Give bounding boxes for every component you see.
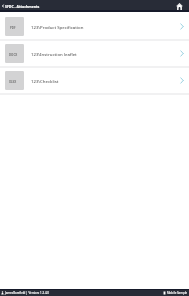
button[interactable]: Home [173, 0, 185, 12]
staticText: SFDC - Attachments [5, 4, 40, 9]
staticText: 123\Product Specification [31, 24, 180, 30]
staticText: XLSX [9, 80, 17, 84]
staticText: PDF [10, 26, 16, 30]
staticText: 123\Checklist [31, 78, 180, 84]
button[interactable]: PDF [0, 14, 189, 39]
button[interactable]: XLSX [0, 68, 189, 93]
staticText: Mobile Sample [167, 291, 188, 295]
staticText: 123\Instruction leaflet [31, 51, 180, 57]
staticText: JamesBarefield | Version: 1.3.4.0 [5, 291, 50, 295]
button[interactable]: Back [0, 0, 5, 12]
staticText: DOCX [9, 53, 18, 57]
button[interactable]: DOCX [0, 41, 189, 66]
